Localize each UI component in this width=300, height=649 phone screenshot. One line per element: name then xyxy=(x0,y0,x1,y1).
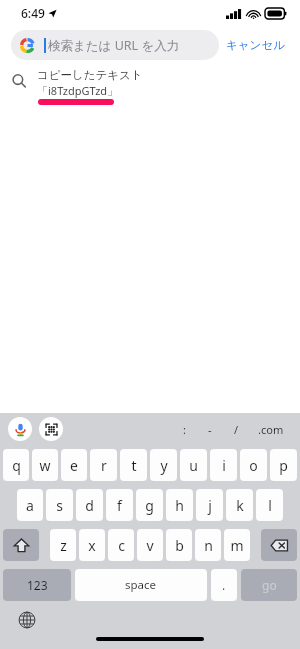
button[interactable]: s xyxy=(46,489,73,521)
staticText: z xyxy=(60,536,67,555)
button[interactable]: : xyxy=(174,418,195,441)
button[interactable]: Backspace xyxy=(261,529,297,561)
staticText: w xyxy=(39,456,51,475)
staticText: r xyxy=(101,456,107,475)
button[interactable]: w xyxy=(32,449,58,481)
button[interactable]: .com xyxy=(252,418,290,441)
button[interactable]: j xyxy=(196,489,223,521)
staticText: 6:49 xyxy=(21,5,45,21)
staticText: space xyxy=(125,577,157,593)
button[interactable]: n xyxy=(195,529,221,561)
staticText: k xyxy=(236,496,244,515)
button[interactable]: h xyxy=(166,489,193,521)
staticText: u xyxy=(189,456,198,475)
staticText: キャンセル xyxy=(226,38,285,52)
staticText: - xyxy=(208,422,212,437)
button[interactable]: c xyxy=(108,529,134,561)
staticText: s xyxy=(56,496,63,515)
button[interactable]: v xyxy=(137,529,163,561)
staticText: e xyxy=(70,456,78,475)
button[interactable]: Voice search xyxy=(8,417,32,441)
button[interactable]: x xyxy=(79,529,105,561)
button[interactable]: g xyxy=(136,489,163,521)
staticText: i xyxy=(222,456,226,475)
button[interactable]: space xyxy=(75,569,207,601)
staticText: x xyxy=(88,536,96,555)
staticText: q xyxy=(12,456,21,475)
button[interactable]: m xyxy=(224,529,250,561)
staticText: .com xyxy=(258,422,284,437)
staticText: 123 xyxy=(27,577,48,593)
staticText: g xyxy=(145,496,154,515)
button[interactable]: e xyxy=(61,449,87,481)
staticText: a xyxy=(26,496,34,515)
staticText: / xyxy=(234,422,239,437)
button[interactable]: l xyxy=(256,489,283,521)
button[interactable]: y xyxy=(150,449,177,481)
staticText: y xyxy=(160,456,168,475)
button[interactable]: Google Lens xyxy=(39,417,63,441)
button[interactable]: Change keyboard xyxy=(16,609,38,631)
staticText: コピーしたテキスト xyxy=(37,68,143,82)
button[interactable]: 検索または URL を入力 xyxy=(11,30,219,60)
staticText: : xyxy=(183,422,186,437)
button[interactable]: k xyxy=(226,489,253,521)
staticText: v xyxy=(146,536,154,555)
button[interactable]: Shift xyxy=(3,529,39,561)
staticText: t xyxy=(131,456,137,475)
button[interactable]: - xyxy=(199,418,221,441)
button[interactable]: o xyxy=(240,449,267,481)
button[interactable]: z xyxy=(50,529,76,561)
button[interactable]: . xyxy=(211,569,237,601)
button[interactable]: d xyxy=(76,489,103,521)
staticText: j xyxy=(208,496,212,515)
button[interactable]: / xyxy=(225,418,248,441)
button[interactable]: a xyxy=(17,489,43,521)
button[interactable]: q xyxy=(3,449,29,481)
staticText: c xyxy=(118,536,125,555)
button[interactable]: i xyxy=(210,449,237,481)
button[interactable]: キャンセル xyxy=(219,32,292,58)
staticText: f xyxy=(117,496,122,515)
staticText: 「i8TzdpGTzd」 xyxy=(37,83,119,98)
staticText: b xyxy=(175,536,184,555)
button[interactable]: コピーしたテキスト xyxy=(0,64,300,110)
button[interactable]: p xyxy=(270,449,297,481)
staticText: 検索または URL を入力 xyxy=(48,37,180,54)
staticText: o xyxy=(249,456,258,475)
button[interactable]: u xyxy=(180,449,207,481)
button[interactable]: r xyxy=(90,449,117,481)
staticText: d xyxy=(85,496,94,515)
staticText: h xyxy=(175,496,184,515)
staticText: . xyxy=(222,577,226,593)
staticText: m xyxy=(230,536,244,555)
button[interactable]: f xyxy=(106,489,133,521)
staticText: go xyxy=(262,577,277,593)
button[interactable]: b xyxy=(166,529,192,561)
button[interactable]: 123 xyxy=(3,569,71,601)
staticText: l xyxy=(268,496,272,515)
staticText: p xyxy=(279,456,288,475)
button[interactable]: go xyxy=(241,569,297,601)
staticText: n xyxy=(204,536,213,555)
button[interactable]: t xyxy=(120,449,147,481)
